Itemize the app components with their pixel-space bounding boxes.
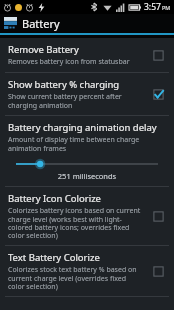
button[interactable]: Show battery % charging — [0, 73, 174, 116]
staticText: Amount of display time between charge an… — [8, 135, 140, 153]
staticText: Battery Icon Colorize — [8, 192, 101, 205]
staticText: Battery — [22, 16, 60, 31]
staticText: Removes battery icon from statusbar — [8, 57, 130, 67]
staticText: Colorizes battery icons based on current… — [8, 206, 141, 240]
button[interactable]: Text Battery Colorize — [0, 246, 174, 297]
button[interactable]: Battery Icon Colorize — [0, 187, 174, 246]
staticText: Colorizes stock text battery % based on … — [8, 265, 137, 291]
staticText: Text Battery Colorize — [8, 251, 100, 264]
button[interactable]: Battery — [0, 14, 174, 33]
staticText: Battery charging animation delay — [8, 121, 157, 134]
staticText: Show current battery percent after charg… — [8, 92, 122, 110]
staticText: Show battery % charging — [8, 78, 120, 91]
button[interactable]: Remove Battery — [0, 38, 174, 73]
button[interactable]: Battery charging animation delay — [0, 116, 174, 187]
staticText: PM — [162, 4, 171, 11]
staticText: 251 milliseconds — [0, 171, 174, 181]
staticText: Remove Battery — [8, 43, 79, 56]
staticText: 3:57 — [144, 1, 161, 13]
